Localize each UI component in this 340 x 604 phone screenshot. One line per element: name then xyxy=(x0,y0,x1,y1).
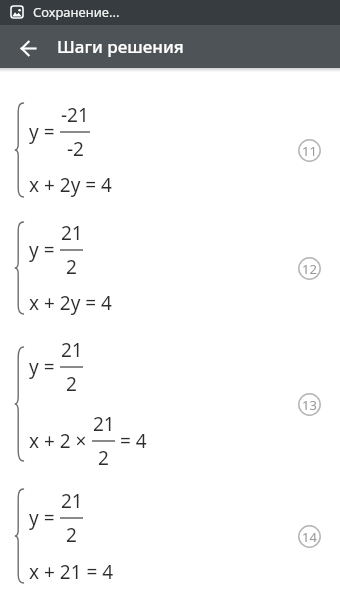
staticText: 2 xyxy=(66,522,77,548)
staticText: 21 xyxy=(61,220,83,246)
staticText: 13 xyxy=(302,396,317,414)
staticText: y = xyxy=(29,119,60,145)
button[interactable]: y = xyxy=(0,346,340,462)
staticText: Сохранение... xyxy=(33,3,120,21)
staticText: -2 xyxy=(67,136,84,162)
staticText: 2 xyxy=(66,371,77,397)
staticText: Шаги решения xyxy=(57,35,184,58)
staticText: 11 xyxy=(302,142,317,160)
button[interactable]: y = xyxy=(0,488,340,584)
staticText: y = xyxy=(29,354,60,380)
staticText: x + 2y = 4 xyxy=(29,290,112,316)
staticText: x + 21 = 4 xyxy=(29,559,114,585)
staticText: x + 2 × xyxy=(29,428,92,454)
staticText: 14 xyxy=(302,528,317,546)
staticText: 2 xyxy=(98,445,109,471)
staticText: y = xyxy=(29,505,60,531)
staticText: 21 xyxy=(61,488,83,514)
staticText: 2 xyxy=(66,254,77,280)
button[interactable]: y = xyxy=(0,221,340,315)
staticText: x + 2y = 4 xyxy=(29,172,112,198)
button[interactable]: y = xyxy=(0,102,340,198)
staticText: 21 xyxy=(61,337,83,363)
staticText: -21 xyxy=(61,102,89,128)
staticText: y = xyxy=(29,237,60,263)
staticText: 12 xyxy=(302,260,317,278)
button[interactable] xyxy=(20,39,36,55)
staticText: 21 xyxy=(93,411,115,437)
staticText: = 4 xyxy=(115,428,147,454)
